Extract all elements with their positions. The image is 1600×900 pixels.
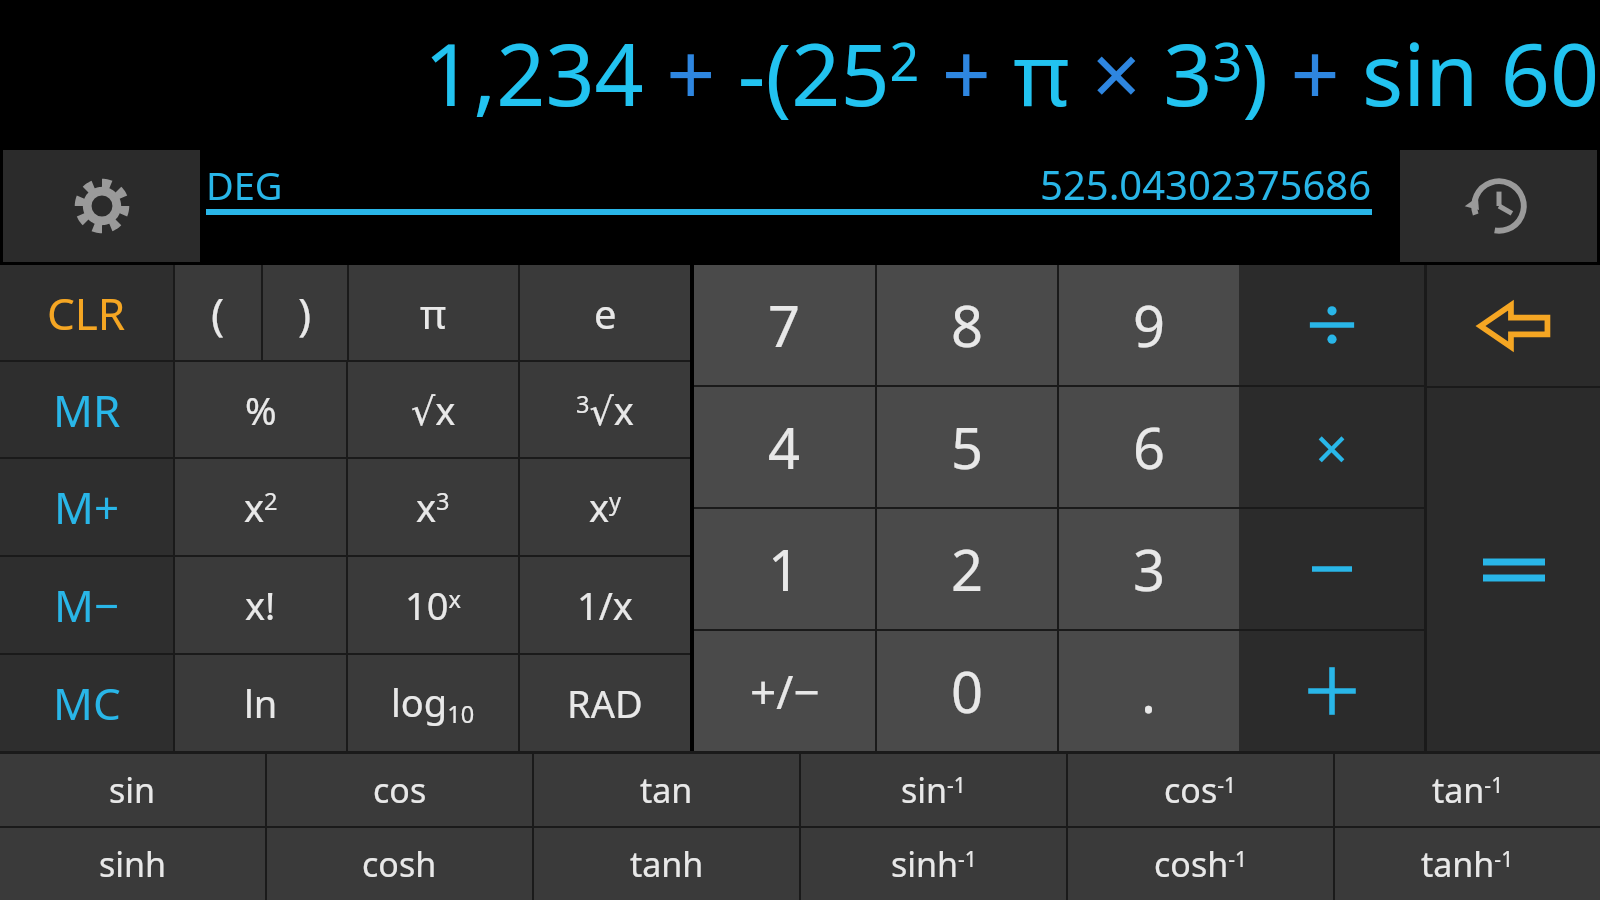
- button[interactable]: sinh-1: [801, 828, 1066, 900]
- button[interactable]: MR: [0, 362, 173, 457]
- button[interactable]: cosh-1: [1068, 828, 1333, 900]
- button[interactable]: ): [263, 265, 347, 360]
- staticText: x3: [416, 481, 450, 533]
- staticText: tan-1: [1432, 767, 1504, 813]
- button[interactable]: 7: [694, 265, 875, 385]
- staticText: MR: [53, 380, 121, 440]
- staticText: 1: [768, 531, 801, 607]
- button[interactable]: .: [1059, 631, 1239, 751]
- staticText: 6: [1133, 409, 1166, 485]
- button[interactable]: 1/x: [520, 557, 690, 653]
- button[interactable]: x2: [175, 459, 346, 555]
- button[interactable]: π: [349, 265, 518, 360]
- staticText: log10: [391, 676, 475, 730]
- staticText: DEG: [206, 159, 283, 211]
- staticText: e: [594, 286, 617, 340]
- staticText: 1/x: [577, 579, 633, 631]
- button[interactable]: cos-1: [1068, 754, 1333, 826]
- button[interactable]: 6: [1059, 387, 1239, 507]
- button[interactable]: Equals: [1427, 388, 1600, 751]
- button[interactable]: 3√x: [520, 362, 690, 457]
- button[interactable]: 1: [694, 509, 875, 629]
- button[interactable]: 4: [694, 387, 875, 507]
- staticText: RAD: [567, 677, 643, 729]
- staticText: 9: [1133, 287, 1166, 363]
- button[interactable]: [1239, 509, 1424, 629]
- staticText: 8: [951, 287, 984, 363]
- staticText: 4: [768, 409, 801, 485]
- staticText: cos: [373, 767, 427, 813]
- staticText: 3√x: [576, 384, 634, 436]
- button[interactable]: %: [175, 362, 346, 457]
- button[interactable]: CLR: [0, 265, 173, 360]
- button[interactable]: 8: [877, 265, 1057, 385]
- button[interactable]: 5: [877, 387, 1057, 507]
- button[interactable]: [1239, 631, 1424, 751]
- button[interactable]: (: [175, 265, 261, 360]
- button[interactable]: 3: [1059, 509, 1239, 629]
- button[interactable]: Backspace: [1427, 265, 1600, 386]
- button[interactable]: 9: [1059, 265, 1239, 385]
- button[interactable]: 0: [877, 631, 1057, 751]
- button[interactable]: sin-1: [801, 754, 1066, 826]
- staticText: tanh: [630, 841, 704, 887]
- button[interactable]: +/−: [694, 631, 875, 751]
- staticText: cosh: [362, 841, 437, 887]
- button[interactable]: xy: [520, 459, 690, 555]
- button[interactable]: RAD: [520, 655, 690, 751]
- button[interactable]: History: [1400, 150, 1597, 262]
- staticText: tanh-1: [1421, 841, 1514, 887]
- button[interactable]: [1239, 265, 1424, 385]
- button[interactable]: tanh: [534, 828, 799, 900]
- button[interactable]: Settings: [3, 150, 200, 262]
- staticText: √x: [411, 384, 456, 436]
- button[interactable]: log10: [348, 655, 518, 751]
- staticText: x!: [245, 579, 276, 631]
- button[interactable]: MC: [0, 655, 173, 751]
- staticText: π: [420, 286, 447, 340]
- staticText: ×: [1315, 408, 1349, 487]
- button[interactable]: cosh: [267, 828, 532, 900]
- staticText: ln: [244, 677, 278, 729]
- staticText: (: [211, 283, 225, 343]
- button[interactable]: M−: [0, 557, 173, 653]
- staticText: 10x: [405, 579, 461, 631]
- button[interactable]: e: [520, 265, 690, 360]
- button[interactable]: x!: [175, 557, 346, 653]
- button[interactable]: x3: [348, 459, 518, 555]
- staticText: sin: [109, 767, 156, 813]
- button[interactable]: 10x: [348, 557, 518, 653]
- button[interactable]: sin: [0, 754, 265, 826]
- button[interactable]: tan: [534, 754, 799, 826]
- staticText: %: [245, 384, 277, 436]
- staticText: ): [298, 283, 312, 343]
- staticText: tan: [640, 767, 693, 813]
- staticText: 7: [768, 287, 801, 363]
- button[interactable]: cos: [267, 754, 532, 826]
- staticText: x2: [244, 481, 278, 533]
- staticText: sinh-1: [891, 841, 977, 887]
- staticText: 2: [951, 531, 984, 607]
- button[interactable]: ln: [175, 655, 346, 751]
- staticText: sin-1: [901, 767, 966, 813]
- staticText: M−: [54, 575, 120, 635]
- button[interactable]: 2: [877, 509, 1057, 629]
- button[interactable]: tanh-1: [1335, 828, 1600, 900]
- staticText: M+: [54, 477, 120, 537]
- button[interactable]: tan-1: [1335, 754, 1600, 826]
- staticText: +/−: [750, 660, 820, 723]
- button[interactable]: ×: [1239, 387, 1424, 507]
- staticText: cos-1: [1164, 767, 1237, 813]
- staticText: 525.04302375686: [1040, 157, 1372, 211]
- staticText: sinh: [99, 841, 167, 887]
- staticText: 1,234 + -(252 + π × 33) + sin 60: [424, 14, 1600, 131]
- staticText: cosh-1: [1154, 841, 1248, 887]
- staticText: 0: [951, 653, 984, 729]
- button[interactable]: sinh: [0, 828, 265, 900]
- staticText: .: [1141, 653, 1157, 729]
- staticText: xy: [589, 481, 622, 533]
- button[interactable]: M+: [0, 459, 173, 555]
- button[interactable]: √x: [348, 362, 518, 457]
- staticText: MC: [53, 673, 121, 733]
- staticText: 5: [951, 409, 984, 485]
